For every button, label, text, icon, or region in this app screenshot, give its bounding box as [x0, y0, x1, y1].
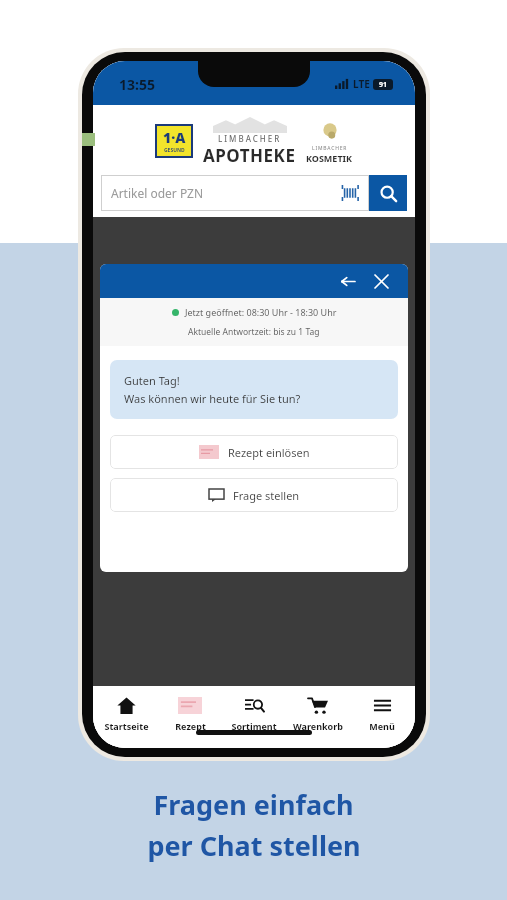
button[interactable]: Artikel oder PZN — [101, 175, 369, 211]
button[interactable]: Rezept einlösen — [110, 435, 398, 469]
staticText: per Chat stellen — [147, 827, 361, 864]
staticText: Guten Tag! — [124, 373, 180, 388]
staticText: Rezept — [175, 720, 206, 732]
button[interactable]: Frage stellen — [110, 478, 398, 512]
button[interactable]: Menü — [351, 686, 413, 748]
button[interactable]: Suchen — [369, 175, 407, 211]
staticText: Rezept einlösen — [228, 445, 310, 460]
staticText: Warenkorb — [293, 720, 343, 732]
button[interactable]: Sortiment — [223, 686, 285, 748]
staticText: Frage stellen — [233, 488, 300, 503]
staticText: Was können wir heute für Sie tun? — [124, 391, 301, 406]
button[interactable]: Schließen — [368, 268, 394, 294]
staticText: Fragen einfach — [153, 786, 354, 823]
button[interactable]: Warenkorb — [287, 686, 349, 748]
staticText: Menü — [369, 720, 395, 732]
staticText: 91 — [379, 80, 388, 90]
button[interactable]: Zurück — [334, 268, 360, 294]
staticText: Artikel oder PZN — [111, 185, 341, 201]
staticText: 13:55 — [119, 75, 155, 94]
staticText: 1·A — [163, 128, 186, 147]
staticText: Aktuelle Antwortzeit: bis zu 1 Tag — [188, 326, 320, 338]
staticText: Sortiment — [231, 720, 277, 732]
staticText: APOTHEKE — [203, 144, 296, 165]
staticText: Startseite — [104, 720, 149, 732]
staticText: LIMBACHER — [312, 145, 348, 152]
button[interactable]: Startseite — [95, 686, 157, 748]
button[interactable]: Rezept — [159, 686, 221, 748]
staticText: Jetzt geöffnet: 08:30 Uhr - 18:30 Uhr — [185, 306, 337, 318]
staticText: KOSMETIK — [306, 152, 353, 164]
staticText: LIMBACHER — [218, 133, 282, 144]
staticText: GESUND — [164, 147, 185, 154]
staticText: LTE — [353, 77, 370, 91]
other: Barcode scannen — [341, 185, 359, 201]
